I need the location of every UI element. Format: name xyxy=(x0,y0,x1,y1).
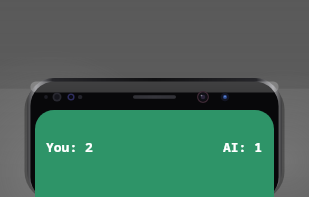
staticText: AI: 1 xyxy=(223,138,263,156)
button[interactable]: You: 2 xyxy=(44,135,95,159)
staticText: You: 2 xyxy=(46,138,93,156)
button[interactable]: AI: 1 xyxy=(221,135,265,159)
